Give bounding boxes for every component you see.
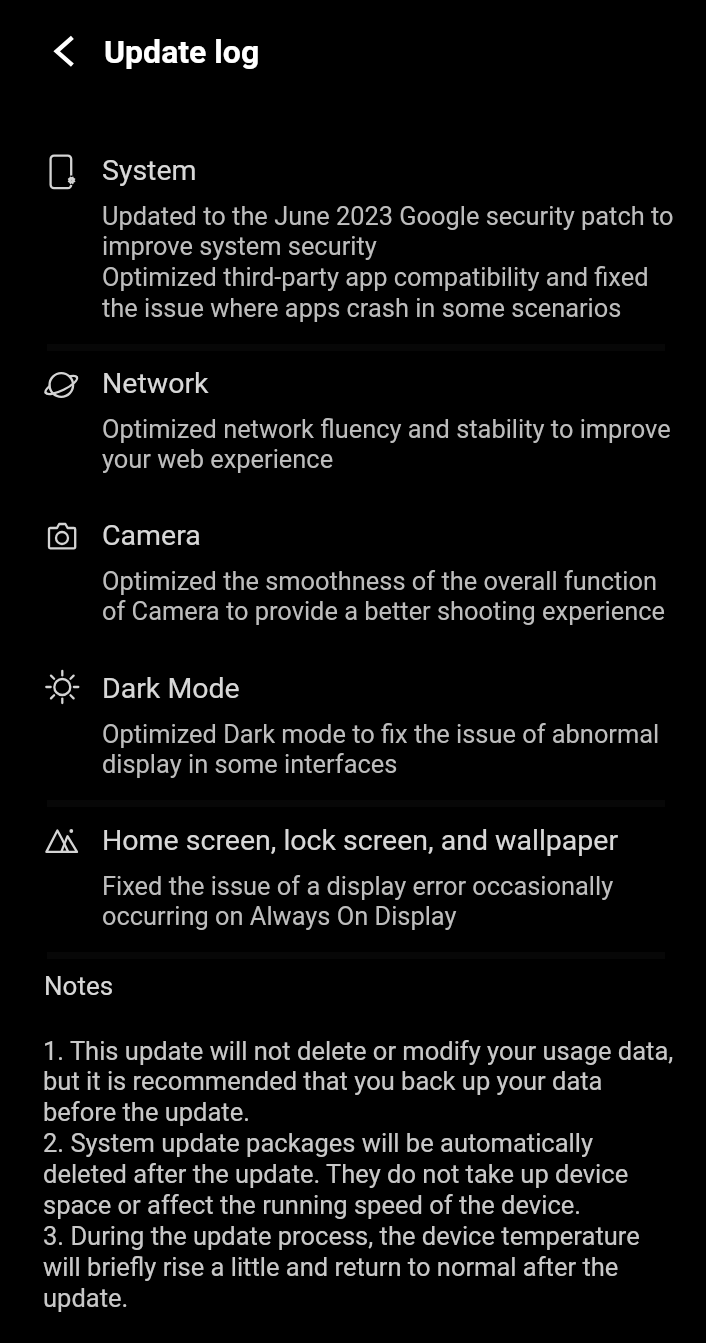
staticText: Camera bbox=[102, 519, 201, 552]
staticText: Notes bbox=[44, 971, 114, 1001]
staticText: Home screen, lock screen, and wallpaper bbox=[102, 824, 619, 857]
staticText: Network bbox=[102, 367, 209, 400]
staticText: Update log bbox=[104, 33, 260, 71]
staticText: Dark Mode bbox=[102, 672, 240, 705]
button[interactable]: Dark Mode bbox=[0, 658, 706, 778]
staticText: System bbox=[102, 154, 197, 187]
button[interactable]: Back bbox=[30, 20, 96, 86]
staticText: Optimized network fluency and stability … bbox=[102, 414, 680, 474]
button[interactable]: Network bbox=[0, 353, 706, 473]
staticText: Optimized the smoothness of the overall … bbox=[102, 566, 680, 626]
staticText: 1. This update will not delete or modify… bbox=[43, 1036, 680, 1313]
button[interactable]: System bbox=[0, 140, 706, 320]
button[interactable]: Camera bbox=[0, 505, 706, 625]
staticText: Optimized Dark mode to fix the issue of … bbox=[102, 719, 680, 779]
staticText: Fixed the issue of a display error occas… bbox=[102, 871, 680, 931]
staticText: Updated to the June 2023 Google security… bbox=[102, 201, 680, 323]
button[interactable]: Home screen, lock screen, and wallpaper bbox=[0, 810, 706, 930]
